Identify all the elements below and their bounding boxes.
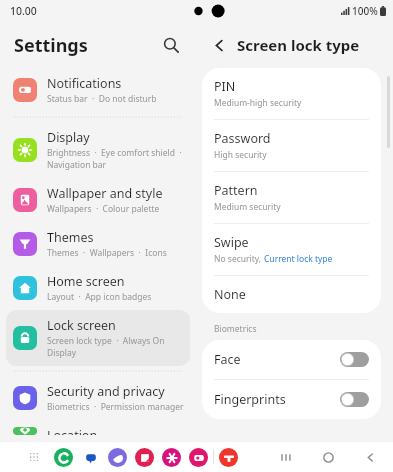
staticText: Password bbox=[214, 130, 271, 147]
staticText: Wallpapers · Colour palette bbox=[47, 203, 160, 215]
button[interactable]: Back bbox=[206, 32, 232, 58]
staticText: Fingerprints bbox=[214, 391, 340, 408]
button[interactable]: note bbox=[135, 448, 154, 467]
button[interactable]: star bbox=[162, 448, 181, 467]
staticText: Lock screen bbox=[47, 317, 116, 334]
staticText: None bbox=[214, 286, 246, 303]
staticText: Location bbox=[47, 427, 98, 435]
staticText: Wallpaper and style bbox=[47, 185, 163, 202]
staticText: Medium security bbox=[214, 201, 281, 213]
staticText: PIN bbox=[214, 78, 236, 95]
staticText: Themes · Wallpapers · Icons bbox=[47, 247, 167, 259]
button[interactable]: Security and privacy bbox=[6, 376, 190, 420]
staticText: Pattern bbox=[214, 182, 258, 199]
staticText: Medium-high security bbox=[214, 97, 302, 109]
button[interactable]: msg bbox=[81, 448, 100, 467]
button[interactable]: dish bbox=[219, 448, 238, 467]
button[interactable]: Recents bbox=[275, 446, 297, 468]
button[interactable]: Search bbox=[156, 30, 186, 60]
button[interactable]: c bbox=[54, 448, 73, 467]
staticText: Swipe bbox=[214, 234, 249, 251]
staticText: Biometrics · Permission manager bbox=[47, 401, 184, 413]
staticText: No security, bbox=[214, 253, 264, 265]
staticText: Display bbox=[47, 129, 90, 146]
button[interactable]: Display bbox=[6, 122, 190, 178]
staticText: Screen lock type · Always On Display bbox=[47, 335, 184, 359]
button[interactable]: Back bbox=[359, 446, 381, 468]
staticText: Home screen bbox=[47, 273, 125, 290]
button[interactable]: Notifications bbox=[6, 68, 190, 112]
staticText: Face bbox=[214, 351, 340, 368]
staticText: Brightness · Eye comfort shield · Naviga… bbox=[47, 147, 184, 171]
staticText: Status bar · Do not disturb bbox=[47, 93, 157, 105]
button[interactable]: Apps bbox=[24, 447, 44, 467]
button[interactable]: Wallpaper and style bbox=[6, 178, 190, 222]
staticText: Themes bbox=[47, 229, 94, 246]
staticText: Settings bbox=[14, 33, 156, 58]
button[interactable]: PIN bbox=[202, 68, 381, 119]
button[interactable]: Lock screen bbox=[6, 310, 190, 366]
staticText: Notifications bbox=[47, 75, 122, 92]
staticText: Security and privacy bbox=[47, 383, 165, 400]
button[interactable]: Pattern bbox=[202, 172, 381, 223]
button[interactable]: Location bbox=[6, 420, 190, 442]
button[interactable]: Fingerprints bbox=[202, 380, 381, 419]
button[interactable]: Home screen bbox=[6, 266, 190, 310]
button[interactable]: Face bbox=[202, 340, 381, 379]
button[interactable]: moon bbox=[108, 448, 127, 467]
button[interactable]: Home bbox=[317, 446, 339, 468]
button[interactable]: Password bbox=[202, 120, 381, 171]
staticText: Current lock type bbox=[264, 253, 333, 265]
staticText: High security bbox=[214, 149, 267, 161]
button[interactable]: Themes bbox=[6, 222, 190, 266]
staticText: 100% bbox=[352, 4, 378, 18]
button[interactable]: cam bbox=[189, 448, 208, 467]
button[interactable]: None bbox=[202, 276, 381, 313]
staticText: Screen lock type bbox=[237, 35, 360, 55]
staticText: 10.00 bbox=[10, 4, 37, 18]
button[interactable]: Swipe bbox=[202, 224, 381, 275]
staticText: Layout · App icon badges bbox=[47, 291, 152, 303]
staticText: Biometrics bbox=[214, 323, 257, 335]
